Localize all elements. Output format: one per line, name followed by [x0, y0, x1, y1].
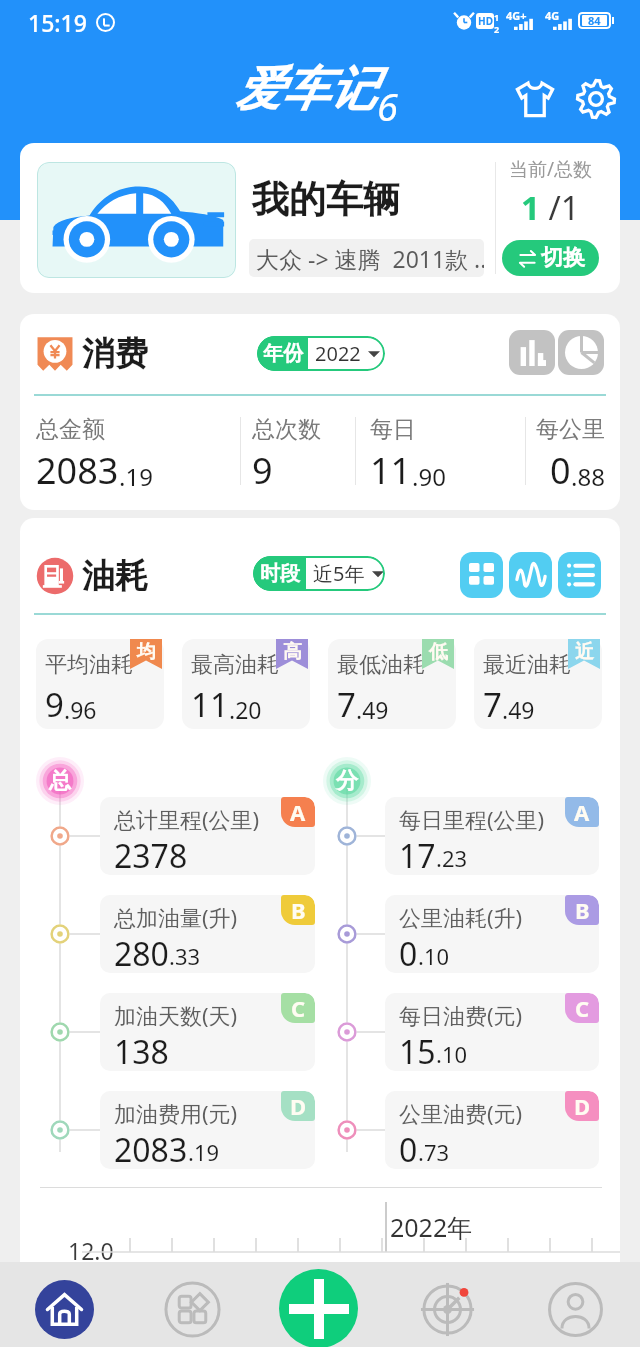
staticText: .19: [188, 1137, 220, 1167]
staticText: 7: [337, 682, 356, 727]
staticText: 公里油耗(升): [399, 902, 523, 932]
staticText: .73: [418, 1137, 450, 1167]
staticText: 4G+: [506, 8, 527, 23]
staticText: .90: [412, 460, 446, 493]
button[interactable]: Bar chart: [509, 330, 555, 375]
button[interactable]: 每日油费(元): [385, 993, 599, 1071]
staticText: 最高油耗: [191, 651, 279, 679]
staticText: 时段: [260, 561, 300, 586]
button[interactable]: 切换: [502, 240, 599, 276]
button[interactable]: List view: [558, 552, 601, 598]
staticText: 0: [399, 932, 418, 973]
staticText: 7: [483, 682, 502, 727]
button[interactable]: Add record: [279, 1269, 358, 1347]
staticText: .23: [436, 843, 468, 873]
staticText: 切换: [541, 244, 585, 272]
button[interactable]: 最高油耗: [182, 639, 310, 729]
staticText: 总: [49, 767, 71, 795]
button[interactable]: 最低油耗: [328, 639, 456, 729]
button[interactable]: 大众 -> 速腾 2011款 ...: [249, 239, 484, 277]
button[interactable]: Chart view: [509, 552, 552, 598]
button[interactable]: 公里油耗(升): [385, 895, 599, 973]
staticText: 9: [45, 682, 64, 727]
button[interactable]: Theme: [509, 73, 561, 125]
staticText: 11: [370, 446, 412, 495]
staticText: 每公里: [536, 415, 605, 444]
staticText: 15:19: [28, 7, 87, 38]
staticText: 2083: [36, 446, 119, 495]
button[interactable]: 平均油耗: [36, 639, 164, 729]
button[interactable]: 我的车辆: [20, 143, 620, 293]
button[interactable]: 总加油量(升): [100, 895, 315, 973]
staticText: 油耗: [82, 555, 148, 597]
staticText: .96: [64, 694, 97, 725]
staticText: 我的车辆: [252, 176, 400, 223]
staticText: 加油天数(天): [114, 1000, 238, 1030]
staticText: 低: [429, 640, 448, 664]
staticText: 总金额: [36, 415, 105, 444]
button[interactable]: Categories: [163, 1280, 222, 1339]
staticText: B: [575, 895, 590, 925]
staticText: 高: [283, 640, 302, 664]
staticText: 每日油费(元): [399, 1000, 523, 1030]
staticText: 消费: [82, 333, 148, 375]
staticText: 2083: [114, 1128, 188, 1169]
staticText: 大众 -> 速腾 2011款 ...: [256, 243, 484, 274]
button[interactable]: 时段: [253, 556, 385, 591]
staticText: 2022年: [390, 1210, 473, 1244]
staticText: C: [575, 993, 590, 1023]
staticText: 爱车记: [235, 60, 376, 119]
button[interactable]: 公里油费(元): [385, 1091, 599, 1169]
staticText: .49: [356, 694, 389, 725]
button[interactable]: Pie chart: [558, 330, 604, 375]
staticText: 每日里程(公里): [399, 804, 545, 834]
staticText: 平均油耗: [45, 651, 133, 679]
button[interactable]: 加油费用(元): [100, 1091, 315, 1169]
button[interactable]: 总计里程(公里): [100, 797, 315, 875]
staticText: 总加油量(升): [114, 902, 238, 932]
staticText: 当前/总数: [509, 156, 593, 182]
staticText: 2022: [315, 340, 361, 367]
staticText: 4G: [545, 8, 560, 23]
staticText: 最低油耗: [337, 651, 425, 679]
staticText: 6: [377, 80, 398, 132]
staticText: 1: [494, 11, 500, 23]
staticText: .33: [169, 941, 201, 971]
staticText: A: [290, 797, 306, 827]
button[interactable]: 最近油耗: [474, 639, 602, 729]
staticText: 公里油费(元): [399, 1098, 523, 1128]
button[interactable]: Profile: [546, 1280, 605, 1339]
staticText: 每日: [370, 415, 416, 444]
button[interactable]: Home: [35, 1280, 94, 1339]
staticText: D: [290, 1091, 307, 1121]
staticText: 最近油耗: [483, 651, 571, 679]
staticText: 0: [399, 1128, 418, 1169]
staticText: HD: [478, 14, 493, 28]
staticText: D: [574, 1091, 591, 1121]
staticText: 均: [137, 640, 156, 664]
button[interactable]: Settings: [570, 73, 622, 125]
staticText: 加油费用(元): [114, 1098, 238, 1128]
button[interactable]: Grid view: [460, 552, 503, 598]
button[interactable]: 每日里程(公里): [385, 797, 599, 875]
button[interactable]: 加油天数(天): [100, 993, 315, 1071]
staticText: .20: [229, 694, 262, 725]
staticText: 年份: [263, 341, 303, 366]
staticText: C: [291, 993, 306, 1023]
staticText: .88: [571, 460, 605, 493]
staticText: .49: [502, 694, 535, 725]
staticText: .19: [119, 460, 153, 493]
button[interactable]: 年份: [257, 336, 385, 371]
staticText: 总次数: [252, 415, 321, 444]
staticText: 2378: [114, 834, 188, 875]
staticText: 280: [114, 932, 169, 973]
staticText: B: [291, 895, 306, 925]
button[interactable]: Discover: [418, 1280, 477, 1339]
staticText: 12.0: [68, 1235, 114, 1266]
staticText: 9: [252, 446, 273, 495]
staticText: 1: [521, 185, 540, 230]
staticText: 近5年: [313, 560, 365, 587]
staticText: 近: [575, 640, 594, 664]
staticText: 17: [399, 834, 436, 875]
staticText: A: [574, 797, 590, 827]
